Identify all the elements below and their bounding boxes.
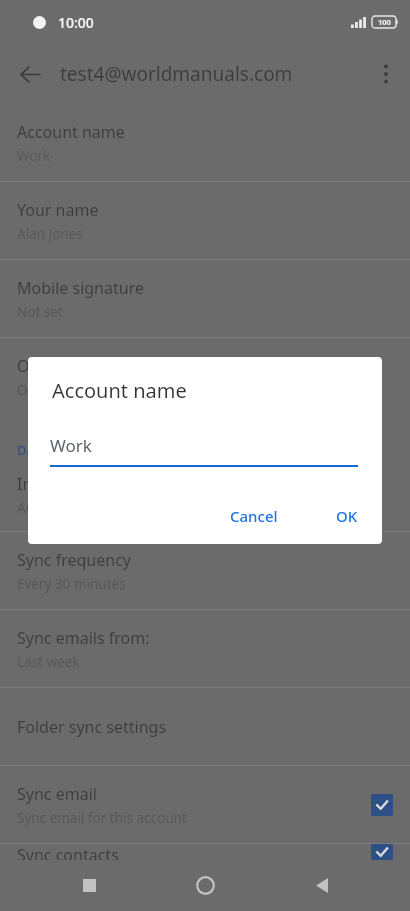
staticText: Your name <box>17 199 99 221</box>
button[interactable]: Cancel <box>218 496 290 536</box>
button[interactable]: More options <box>362 50 410 98</box>
button[interactable]: Folder sync settings <box>0 688 410 765</box>
staticText: Mobile signature <box>17 277 144 299</box>
staticText: Alan Jones <box>17 225 83 243</box>
staticText: Data usage <box>17 441 88 459</box>
button[interactable]: Account name <box>0 104 410 181</box>
button[interactable]: Recents <box>61 860 117 911</box>
staticText: Account name <box>17 121 125 143</box>
staticText: Account name <box>52 377 187 404</box>
staticText: Every 30 minutes <box>17 575 126 593</box>
staticText: OK <box>336 506 358 526</box>
staticText: Work <box>17 147 51 165</box>
staticText: Last week <box>17 653 80 671</box>
button[interactable]: Sync contacts <box>0 844 410 860</box>
staticText: 10:00 <box>58 13 94 32</box>
button[interactable]: Sync email <box>0 766 410 843</box>
staticText: Cancel <box>230 506 278 526</box>
button[interactable]: Back <box>8 52 52 96</box>
staticText: Sync frequency <box>17 549 131 571</box>
staticText: 100 <box>378 17 391 27</box>
button[interactable]: Out of Office Auto Reply <box>0 338 410 415</box>
button[interactable]: Your name <box>0 182 410 259</box>
staticText: Sync email for this account <box>17 809 187 827</box>
button[interactable]: Home <box>177 860 233 911</box>
button[interactable]: Back <box>294 860 350 911</box>
staticText: Sync contacts <box>17 844 119 860</box>
button[interactable]: Inbox check frequency <box>0 459 410 531</box>
staticText: Sync email <box>17 783 97 805</box>
staticText: Sync emails from: <box>17 627 150 649</box>
staticText: Off <box>17 381 37 399</box>
staticText: test4@worldmanuals.com <box>60 61 362 87</box>
staticText: Work <box>50 434 92 457</box>
button[interactable]: Mobile signature <box>0 260 410 337</box>
staticText: Folder sync settings <box>17 716 167 738</box>
staticText: Out of Office Auto Reply <box>17 355 198 377</box>
button[interactable]: Sync emails from: <box>0 610 410 687</box>
staticText: Automatic (Push) <box>17 499 125 517</box>
button[interactable]: Sync frequency <box>0 532 410 609</box>
button[interactable]: OK <box>324 496 370 536</box>
staticText: Not set <box>17 303 63 321</box>
staticText: Inbox check frequency <box>17 473 187 495</box>
